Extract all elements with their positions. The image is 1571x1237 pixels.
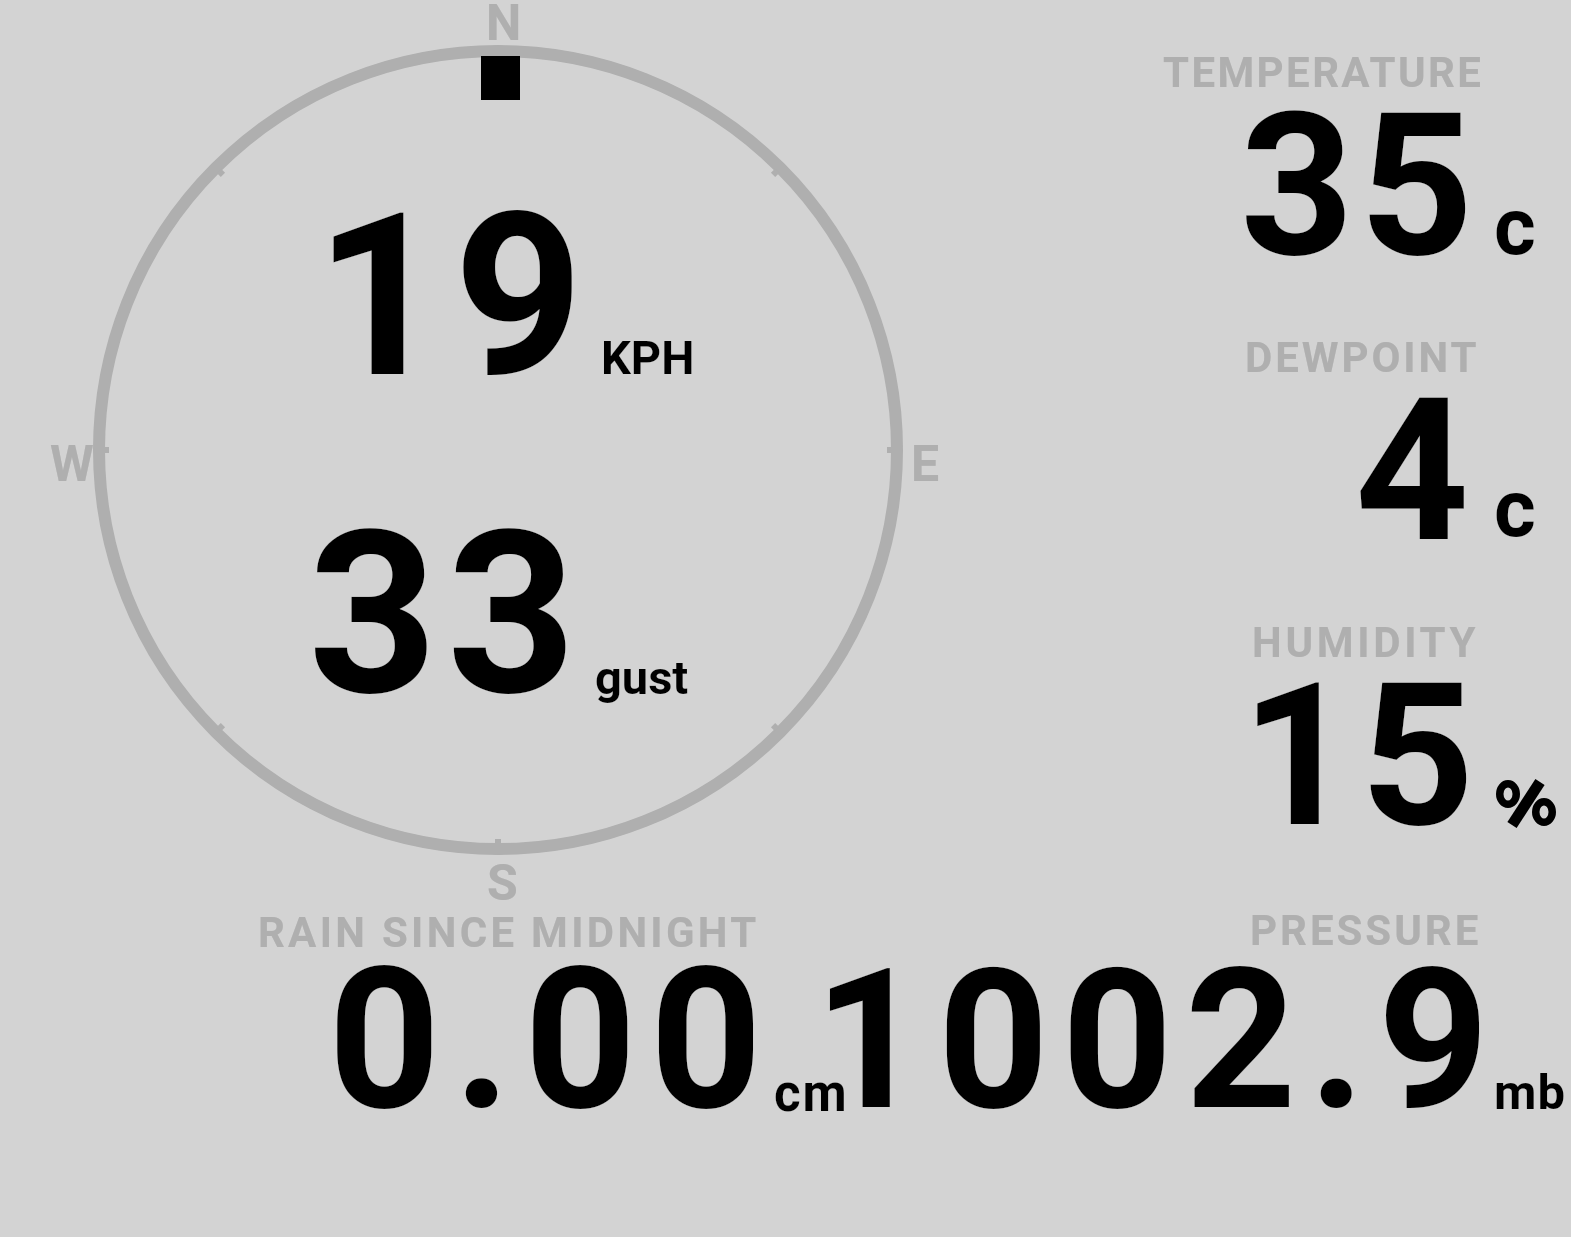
staticText: mb	[1494, 1064, 1567, 1121]
staticText: DEWPOINT	[1245, 333, 1480, 382]
staticText: cm	[774, 1064, 849, 1124]
staticText: HUMIDITY	[1252, 618, 1480, 667]
staticText: 15	[1241, 639, 1480, 872]
staticText: W	[50, 435, 94, 494]
button[interactable]: Dewpoint 4 degrees C	[1100, 325, 1560, 555]
button[interactable]: Temperature 35 degrees C	[1100, 40, 1560, 270]
staticText: TEMPERATURE	[1163, 48, 1484, 97]
button[interactable]: Pressure 1002.9 mb	[860, 900, 1560, 1120]
staticText: PRESSURE	[1250, 906, 1482, 955]
staticText: c	[1494, 180, 1536, 274]
staticText: 0.00	[328, 925, 776, 1155]
staticText: gust	[595, 650, 689, 705]
button[interactable]: Rain since midnight 0.00 cm	[250, 900, 850, 1120]
staticText: E	[911, 435, 940, 494]
staticText: 1002.9	[814, 927, 1502, 1154]
button[interactable]: Humidity 15 percent	[1100, 610, 1560, 840]
staticText: N	[486, 0, 522, 53]
staticText: 33	[308, 482, 586, 747]
staticText: S	[487, 854, 518, 913]
staticText: 35	[1240, 69, 1479, 302]
staticText: 4	[1355, 354, 1470, 587]
staticText: c	[1494, 462, 1536, 556]
button[interactable]: Wind direction compass, 19 KPH, gusting …	[60, 30, 940, 870]
staticText: 19	[315, 164, 593, 429]
staticText: KPH	[601, 330, 695, 385]
staticText: RAIN SINCE MIDNIGHT	[258, 908, 760, 957]
